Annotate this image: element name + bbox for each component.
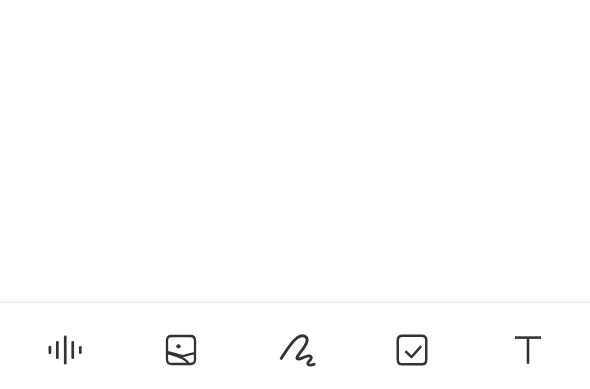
button[interactable]: Drawing bbox=[273, 326, 321, 374]
button[interactable]: Record audio bbox=[41, 326, 89, 374]
button[interactable]: Add image bbox=[157, 326, 205, 374]
button[interactable]: Checklist bbox=[388, 326, 436, 374]
button[interactable]: Text formatting bbox=[504, 326, 552, 374]
